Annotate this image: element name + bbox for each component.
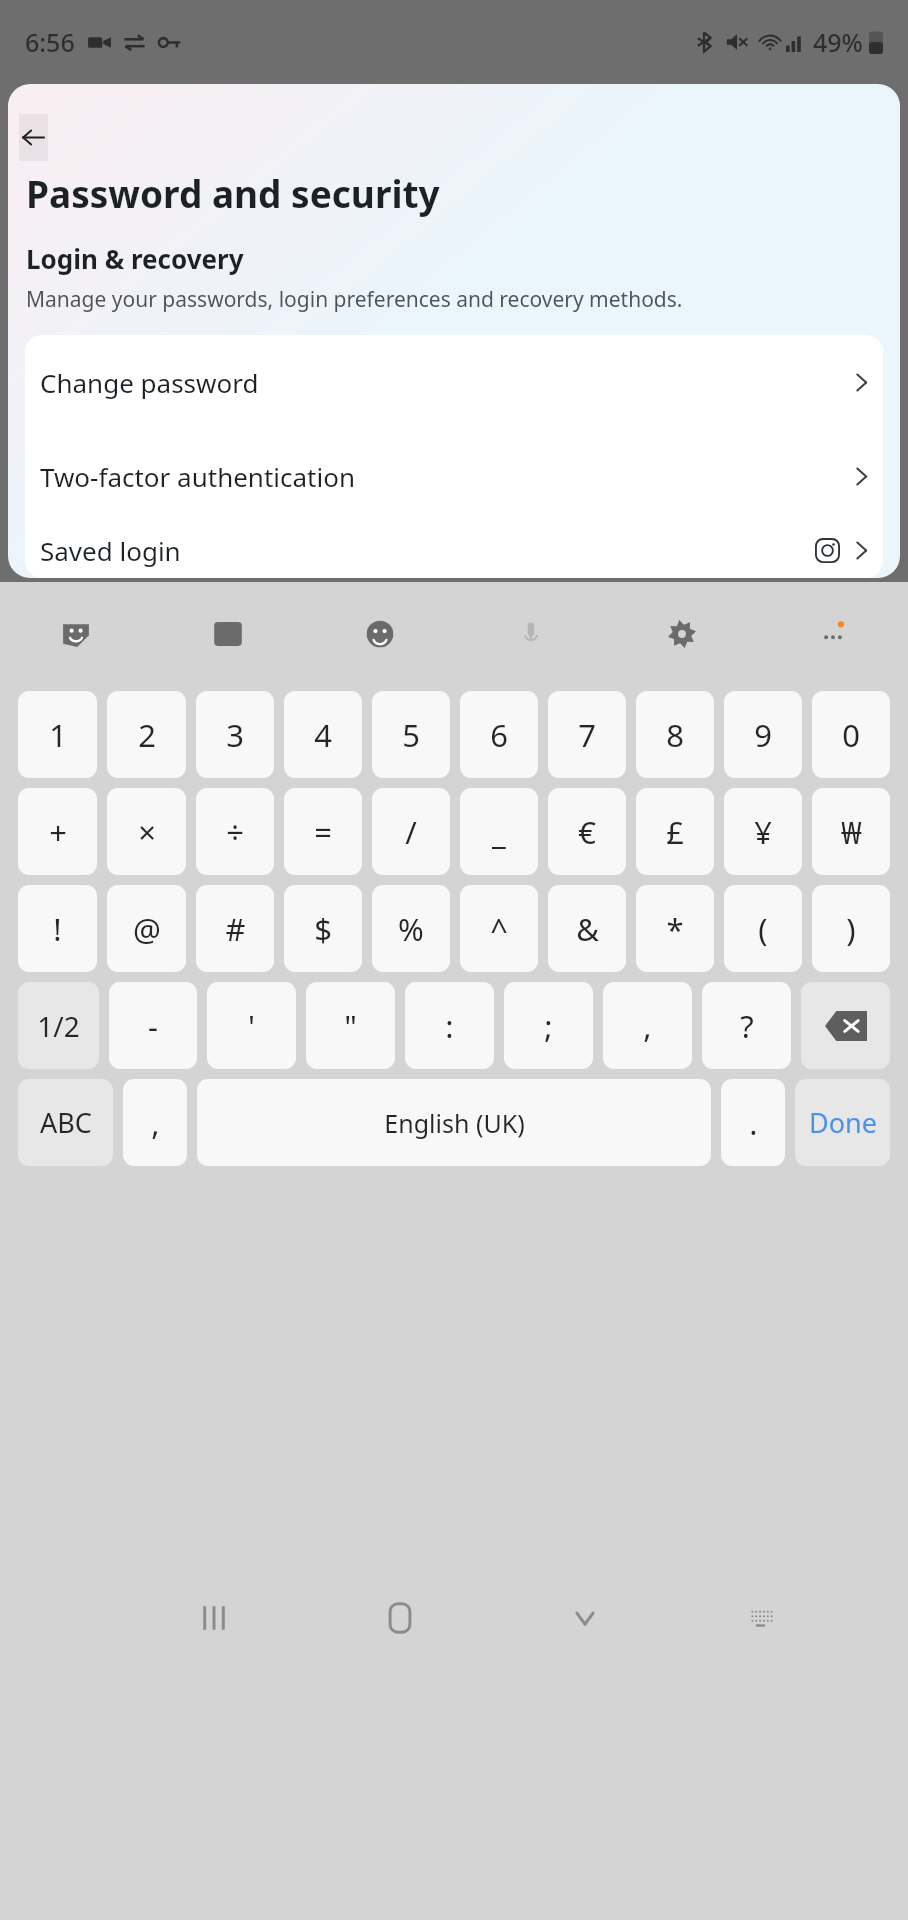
button[interactable]: $ [284, 885, 362, 972]
button[interactable]: ( [724, 885, 802, 972]
staticText: 0 [842, 714, 860, 756]
button[interactable]: ; [504, 982, 593, 1069]
button[interactable]: ^ [460, 885, 538, 972]
button[interactable]: Done [795, 1079, 890, 1166]
staticText: ( [758, 908, 768, 950]
button[interactable]: + [18, 788, 97, 875]
button[interactable]: @ [107, 885, 186, 972]
staticText: , [643, 1005, 652, 1047]
staticText: × [138, 811, 156, 853]
button[interactable]: 9 [724, 691, 802, 778]
button[interactable]: # [196, 885, 274, 972]
button[interactable]: Change password [25, 335, 883, 429]
staticText: ÷ [226, 811, 244, 853]
button[interactable]: Back [19, 114, 48, 161]
staticText: : [445, 1005, 454, 1047]
staticText: 4 [314, 714, 332, 756]
button[interactable]: ¥ [724, 788, 802, 875]
button[interactable]: 8 [636, 691, 714, 778]
staticText: . [749, 1102, 758, 1144]
button[interactable]: ? [702, 982, 791, 1069]
button[interactable]: & [548, 885, 626, 972]
button[interactable]: Home [307, 1316, 492, 1920]
staticText: ! [53, 908, 62, 950]
button[interactable]: ₩ [812, 788, 890, 875]
staticText: 8 [666, 714, 684, 756]
button[interactable]: ABC [18, 1079, 113, 1166]
staticText: # [225, 908, 246, 950]
staticText: ^ [490, 908, 508, 950]
button[interactable]: Stickers [0, 582, 152, 686]
button[interactable]: 0 [812, 691, 890, 778]
button[interactable]: ÷ [196, 788, 274, 875]
staticText: @ [133, 908, 161, 950]
button[interactable]: _ [460, 788, 538, 875]
button[interactable]: 4 [284, 691, 362, 778]
button[interactable]: - [109, 982, 197, 1069]
staticText: 6 [490, 714, 508, 756]
staticText: £ [666, 811, 684, 853]
button[interactable]: £ [636, 788, 714, 875]
staticText: , [151, 1102, 160, 1144]
button[interactable]: Emoji [304, 582, 455, 686]
staticText: ₩ [841, 811, 862, 853]
button[interactable]: Saved login [25, 523, 883, 578]
staticText: " [344, 1005, 357, 1047]
staticText: _ [492, 811, 506, 853]
staticText: 49% [813, 25, 863, 59]
staticText: 9 [754, 714, 772, 756]
button[interactable]: 6 [460, 691, 538, 778]
button[interactable]: GIF [152, 582, 304, 686]
button[interactable]: = [284, 788, 362, 875]
staticText: + [49, 811, 67, 853]
staticText: 5 [402, 714, 420, 756]
staticText: % [398, 908, 424, 950]
staticText: 1/2 [37, 1007, 80, 1045]
button[interactable]: 7 [548, 691, 626, 778]
staticText: 1 [49, 714, 67, 756]
button[interactable]: , [123, 1079, 187, 1166]
button[interactable]: " [306, 982, 395, 1069]
staticText: € [578, 811, 596, 853]
staticText: Done [809, 1104, 877, 1141]
button[interactable]: . [721, 1079, 785, 1166]
button[interactable]: ) [812, 885, 890, 972]
staticText: ; [544, 1005, 553, 1047]
staticText: ABC [40, 1104, 92, 1141]
button[interactable]: , [603, 982, 692, 1069]
button[interactable]: 2 [107, 691, 186, 778]
button[interactable]: × [107, 788, 186, 875]
button[interactable]: Keyboard settings [606, 582, 757, 686]
button[interactable]: / [372, 788, 450, 875]
button[interactable]: More options [757, 582, 908, 686]
staticText: / [405, 811, 417, 853]
staticText: Password and security [26, 168, 440, 218]
button[interactable]: 3 [196, 691, 274, 778]
staticText: ? [740, 1005, 754, 1047]
staticText: & [576, 908, 599, 950]
button[interactable]: ' [207, 982, 296, 1069]
button[interactable]: % [372, 885, 450, 972]
staticText: Manage your passwords, login preferences… [26, 285, 683, 314]
button[interactable]: 1/2 [18, 982, 99, 1069]
staticText: Two-factor authentication [40, 459, 855, 494]
staticText: ) [846, 908, 856, 950]
staticText: * [666, 908, 684, 950]
button[interactable]: 5 [372, 691, 450, 778]
button[interactable]: Backspace [801, 982, 890, 1069]
staticText: 7 [578, 714, 596, 756]
button[interactable]: Two-factor authentication [25, 429, 883, 523]
button[interactable]: English (UK) [197, 1079, 711, 1166]
staticText: - [148, 1005, 158, 1047]
staticText: English (UK) [384, 1106, 525, 1140]
button[interactable]: € [548, 788, 626, 875]
button[interactable]: 1 [18, 691, 97, 778]
button[interactable]: : [405, 982, 494, 1069]
button[interactable]: * [636, 885, 714, 972]
staticText: Change password [40, 365, 855, 400]
button[interactable]: ! [18, 885, 97, 972]
